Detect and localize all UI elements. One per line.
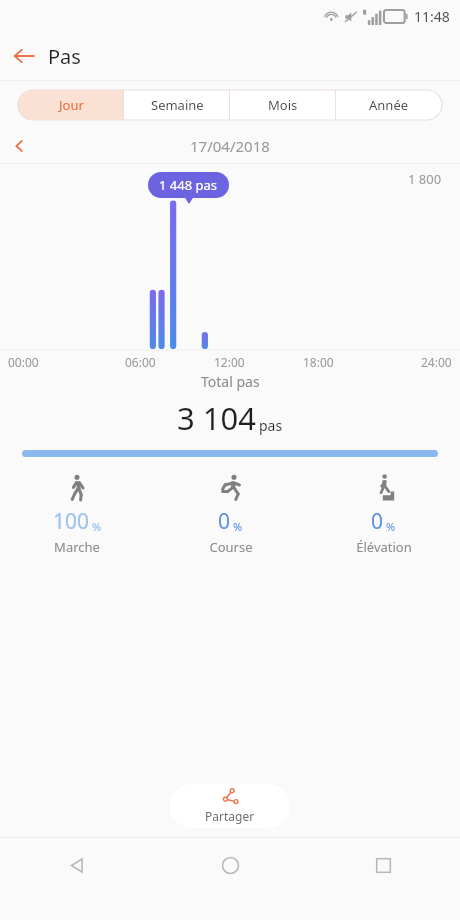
button[interactable]: 100 (0, 473, 154, 556)
staticText: Élévation (356, 538, 412, 556)
staticText: 3 104 (177, 397, 256, 439)
staticText: Course (209, 538, 253, 556)
staticText: 17/04/2018 (190, 136, 270, 156)
staticText: Pas (48, 43, 81, 70)
staticText: % (92, 519, 102, 534)
staticText: 0 (218, 507, 231, 536)
staticText: 18:00 (303, 354, 334, 370)
button[interactable]: Home (154, 838, 307, 892)
staticText: 12:00 (214, 354, 245, 370)
staticText: Année (369, 96, 409, 114)
staticText: 24:00 (421, 354, 452, 370)
button[interactable]: Semaine (124, 90, 230, 120)
staticText: 06:00 (125, 354, 156, 370)
button[interactable]: 0 (154, 473, 307, 556)
staticText: 0 (371, 507, 384, 536)
staticText: 00:00 (8, 354, 39, 370)
staticText: pas (259, 416, 283, 435)
staticText: % (386, 519, 396, 534)
button[interactable]: Année (336, 90, 442, 120)
button[interactable]: Mois (230, 90, 336, 120)
staticText: 1 448 pas (159, 176, 218, 194)
button[interactable]: Jour (18, 90, 124, 120)
staticText: 100 (53, 507, 90, 536)
button[interactable]: 0 (307, 473, 460, 556)
button[interactable]: Back (0, 838, 154, 892)
button[interactable]: Previous day (0, 129, 40, 163)
staticText: % (233, 519, 243, 534)
staticText: 1 800 (408, 170, 442, 188)
button[interactable]: Recent apps (307, 838, 460, 892)
button[interactable]: Partager (170, 784, 290, 828)
staticText: Mois (268, 96, 298, 114)
staticText: Semaine (151, 96, 204, 114)
staticText: Partager (205, 808, 255, 824)
staticText: Jour (59, 96, 84, 114)
button[interactable]: Back (0, 32, 48, 80)
staticText: Total pas (201, 372, 260, 391)
staticText: 11:48 (414, 7, 450, 26)
staticText: Marche (54, 538, 100, 556)
